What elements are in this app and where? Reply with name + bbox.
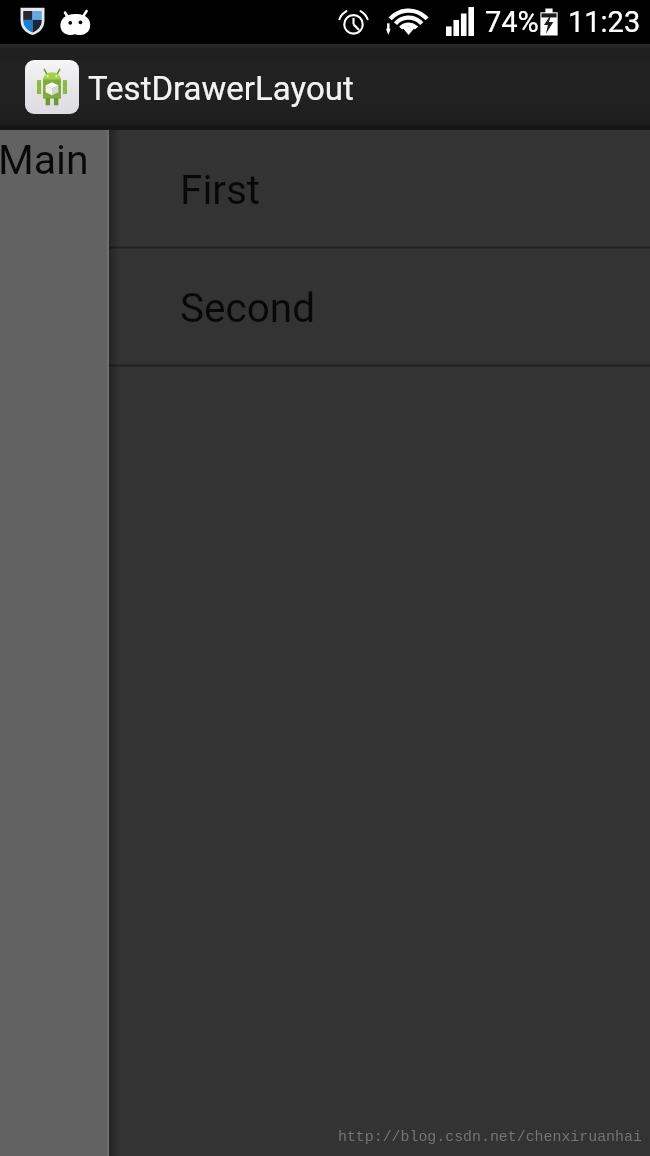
staticText: Second [180, 284, 316, 331]
staticText: 11:23 [568, 5, 641, 39]
staticText: 74% [485, 5, 539, 39]
staticText: TestDrawerLayout [88, 69, 354, 108]
staticText: First [180, 166, 261, 213]
button[interactable]: App icon, open navigation drawer [25, 60, 79, 114]
button[interactable]: First [0, 131, 650, 246]
staticText: http://blog.csdn.net/chenxiruanhai [338, 1129, 642, 1146]
button[interactable]: Second [0, 249, 650, 364]
button[interactable]: Navigation drawer [0, 130, 109, 1156]
staticText: Main [0, 136, 89, 184]
